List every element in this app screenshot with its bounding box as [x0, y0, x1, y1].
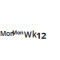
staticText: Mon	[0, 29, 14, 38]
staticText: 12	[36, 29, 46, 41]
staticText: Mon	[12, 29, 23, 36]
staticText: Wk	[24, 29, 37, 40]
